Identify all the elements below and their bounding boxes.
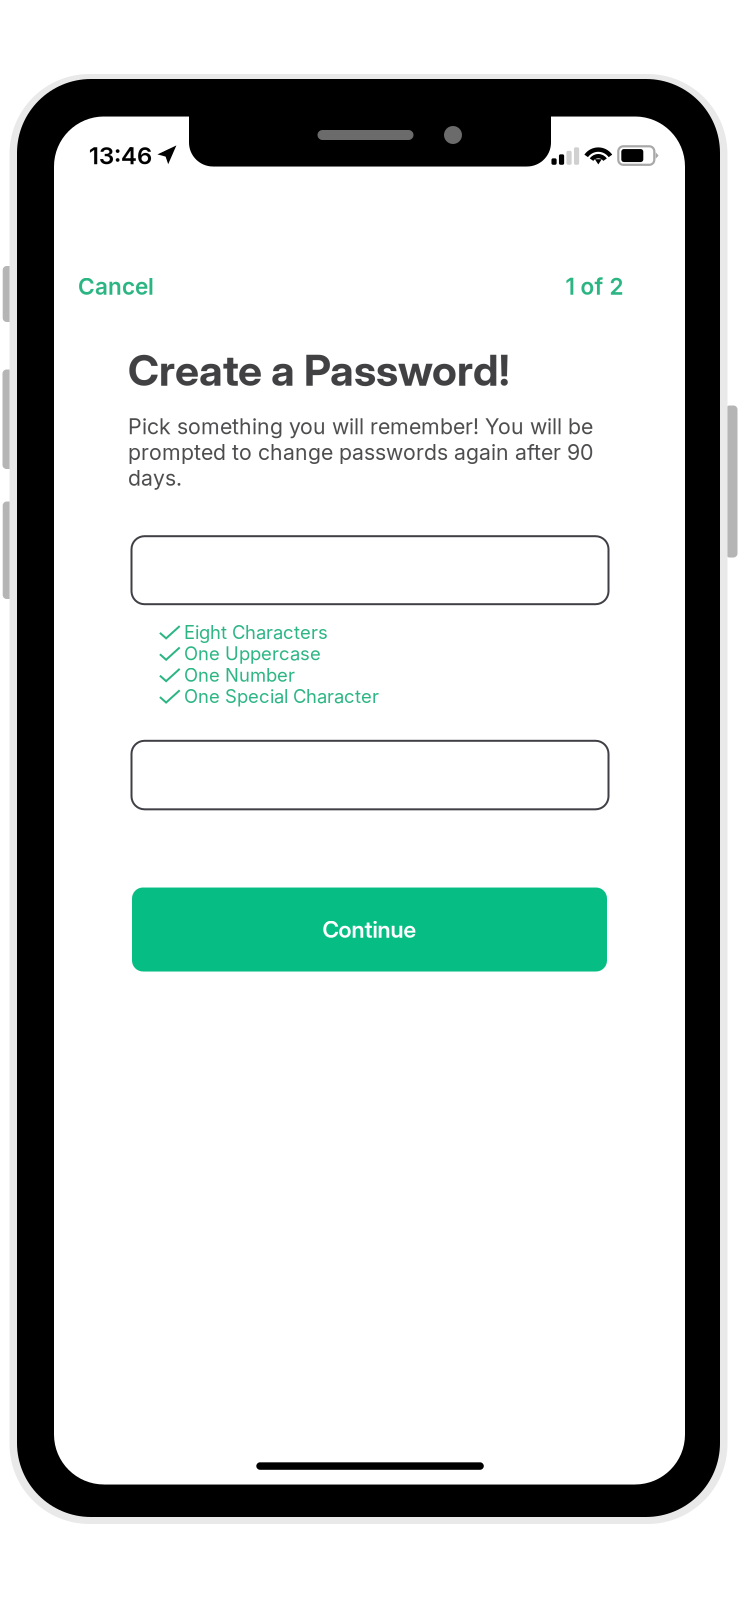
staticText: One Special Character (184, 685, 379, 708)
staticText: One Uppercase (184, 642, 321, 665)
staticText: Continue (322, 916, 416, 943)
staticText: 1 of 2 (565, 273, 623, 300)
staticText: One Number (184, 664, 295, 686)
staticText: Create a Password! (128, 344, 510, 396)
staticText: 13:46 (89, 141, 152, 170)
staticText: Eight Characters (184, 621, 328, 643)
button[interactable]: Cancel (78, 269, 168, 303)
button[interactable]: Continue (132, 887, 607, 971)
staticText: Cancel (78, 273, 154, 300)
button[interactable]: 1 of 2 (543, 269, 623, 303)
staticText: Pick something you will remember! You wi… (128, 413, 593, 491)
